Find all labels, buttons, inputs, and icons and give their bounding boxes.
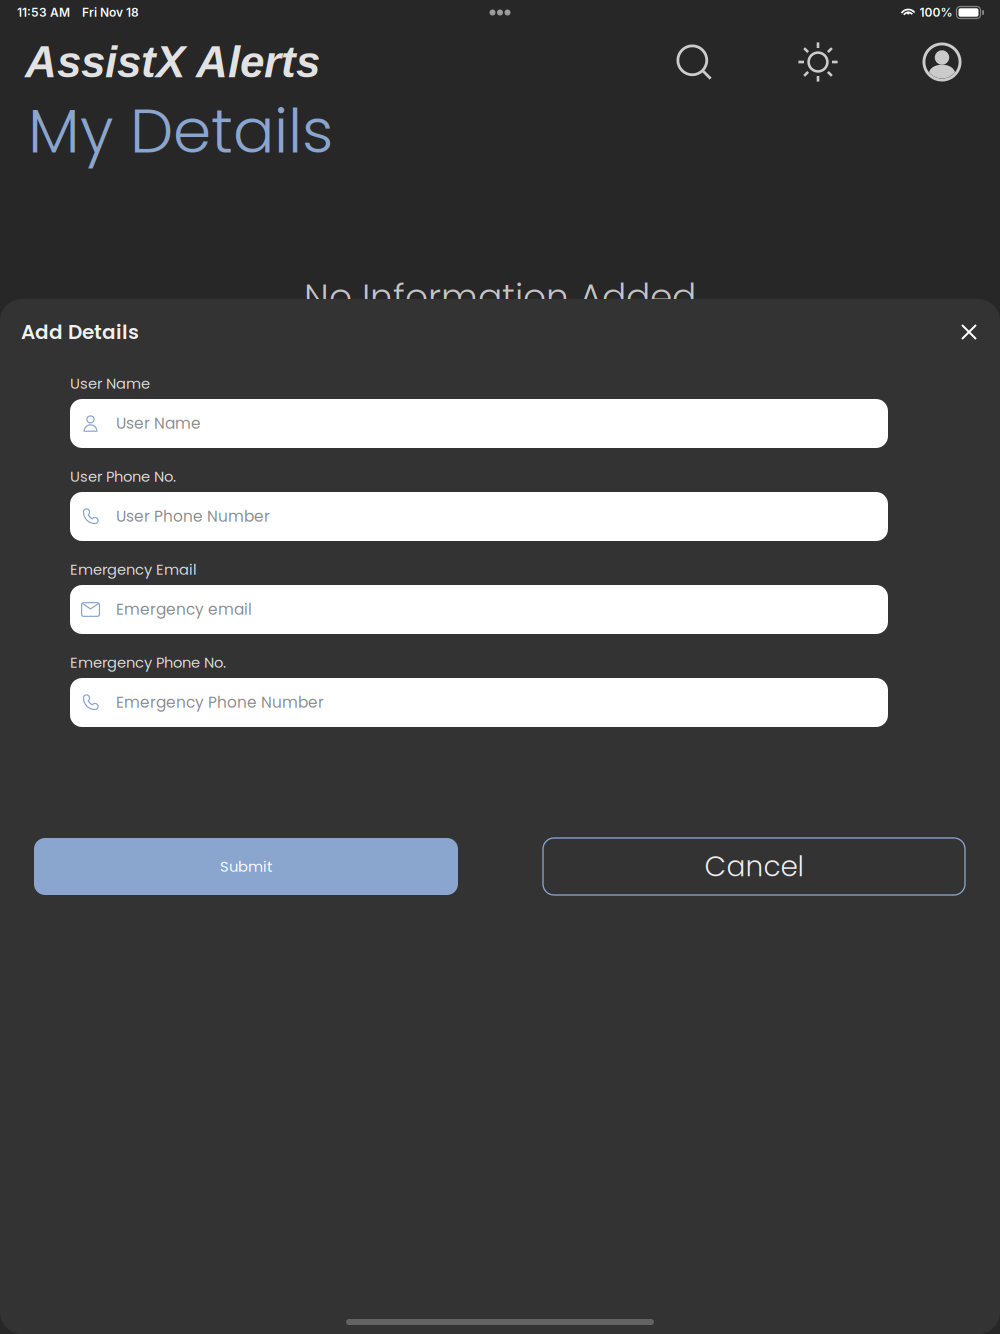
button[interactable]: Close xyxy=(954,317,984,347)
staticText: User Phone Number xyxy=(116,506,270,527)
button[interactable]: Emergency email xyxy=(70,585,888,634)
staticText: User Name xyxy=(70,373,150,394)
staticText: 100% xyxy=(919,5,952,20)
staticText: 11:53 AM xyxy=(17,5,70,20)
button[interactable]: Search xyxy=(674,42,714,82)
staticText: Fri Nov 18 xyxy=(82,5,139,20)
staticText: Emergency Email xyxy=(70,559,197,580)
staticText: Emergency email xyxy=(116,599,252,620)
button[interactable]: User Phone Number xyxy=(70,492,888,541)
button[interactable]: Cancel xyxy=(543,838,965,895)
staticText: Add Details xyxy=(21,318,139,346)
staticText: No Information Added xyxy=(304,272,696,322)
staticText: User Phone No. xyxy=(70,466,176,487)
staticText: Emergency Phone Number xyxy=(116,692,324,713)
staticText: AssistX Alerts xyxy=(25,37,320,87)
button[interactable]: User Name xyxy=(70,399,888,448)
button[interactable]: Submit xyxy=(34,838,458,895)
staticText: Emergency Phone No. xyxy=(70,652,226,673)
staticText: Submit xyxy=(220,856,272,877)
staticText: Cancel xyxy=(704,847,803,886)
staticText: My Details xyxy=(28,88,333,174)
button[interactable]: Brightness xyxy=(798,42,838,82)
button[interactable]: Profile xyxy=(922,42,962,82)
button[interactable]: Emergency Phone Number xyxy=(70,678,888,727)
staticText: User Name xyxy=(116,413,201,434)
